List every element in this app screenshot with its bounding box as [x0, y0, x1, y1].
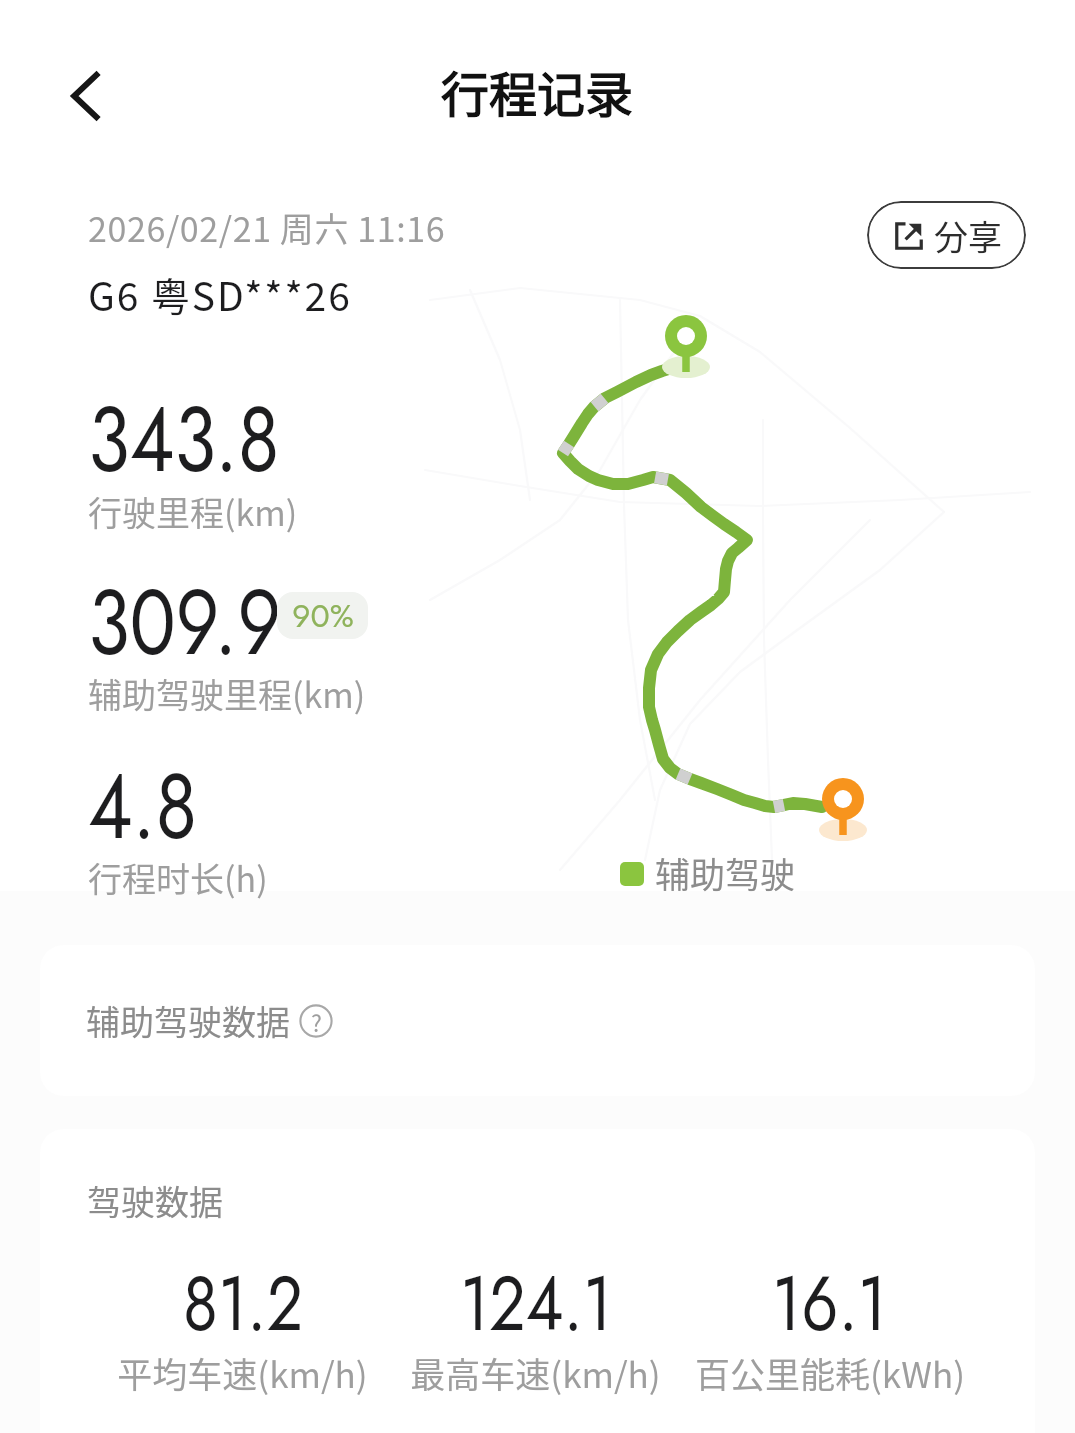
- staticText: 2026/02/21 周六 11:16: [88, 203, 446, 252]
- staticText: 343.8: [88, 374, 280, 505]
- staticText: 4.8: [88, 741, 198, 872]
- button[interactable]: 辅助驾驶数据: [40, 945, 1035, 1096]
- staticText: 16.1: [772, 1248, 887, 1359]
- staticText: 百公里能耗(kWh): [695, 1347, 965, 1398]
- staticText: 行驶里程(km): [88, 487, 298, 536]
- button[interactable]: Back: [38, 51, 128, 141]
- staticText: 最高车速(km/h): [410, 1347, 661, 1398]
- staticText: ?: [311, 1005, 322, 1038]
- staticText: G6 粤SD***26: [88, 266, 352, 322]
- staticText: 平均车速(km/h): [117, 1347, 368, 1398]
- staticText: 行程记录: [441, 56, 634, 126]
- staticText: 分享: [934, 211, 1002, 260]
- staticText: 驾驶数据: [87, 1176, 223, 1225]
- staticText: 辅助驾驶数据: [86, 996, 290, 1045]
- staticText: 124.1: [460, 1248, 612, 1359]
- staticText: 辅助驾驶里程(km): [88, 669, 366, 718]
- staticText: 90%: [292, 593, 354, 639]
- staticText: 行程时长(h): [88, 853, 268, 902]
- staticText: 辅助驾驶: [655, 847, 796, 898]
- staticText: 309.9: [88, 557, 282, 688]
- staticText: 81.2: [182, 1248, 303, 1359]
- button[interactable]: 分享: [867, 201, 1026, 269]
